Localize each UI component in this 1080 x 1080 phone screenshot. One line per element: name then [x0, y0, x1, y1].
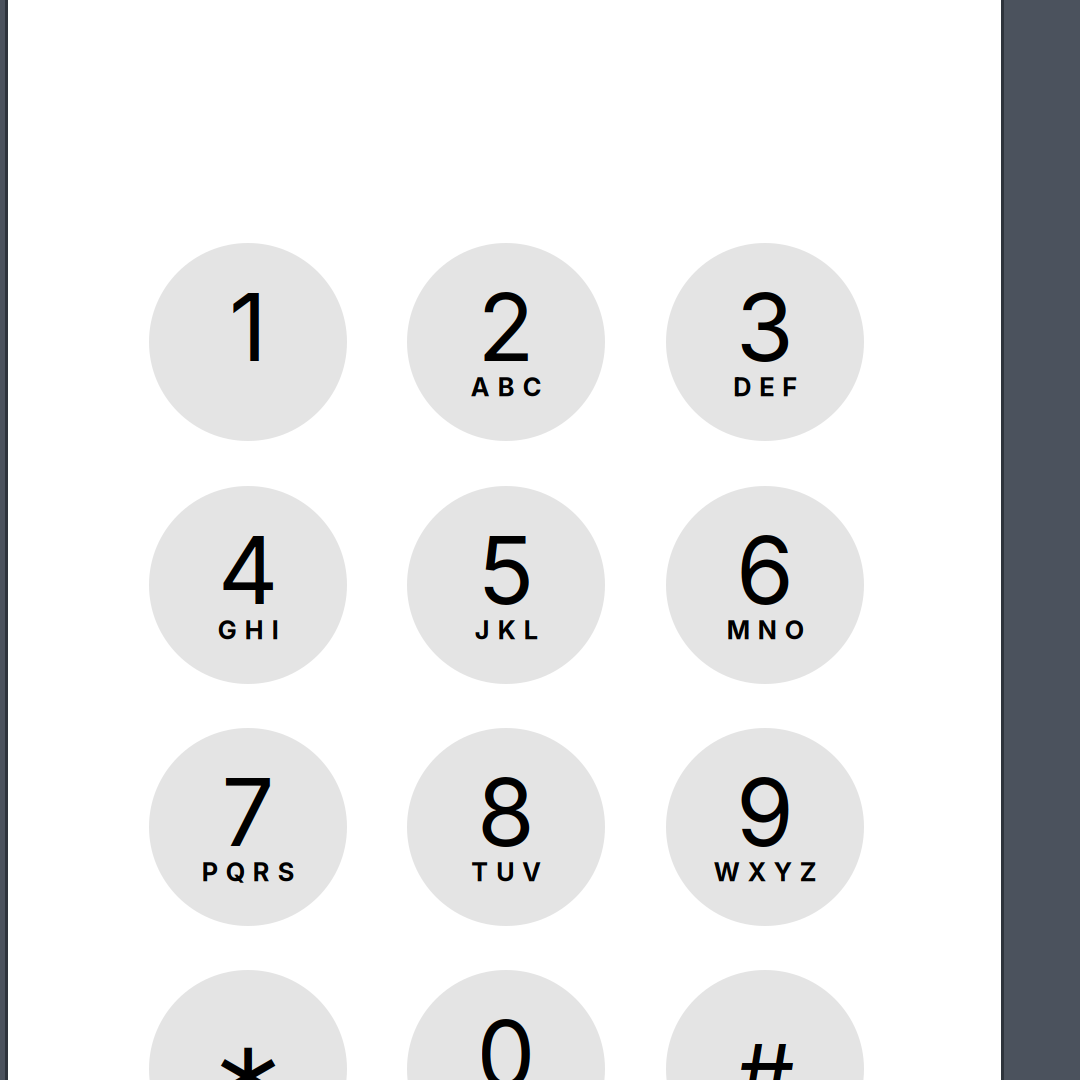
- button[interactable]: 9: [666, 728, 864, 926]
- staticText: 0: [476, 997, 535, 1080]
- staticText: 9: [736, 755, 794, 868]
- staticText: D E F: [733, 372, 797, 402]
- staticText: G H I: [217, 615, 278, 645]
- staticText: 6: [736, 513, 794, 626]
- staticText: A B C: [470, 372, 541, 402]
- staticText: 8: [477, 755, 535, 868]
- button[interactable]: 2: [407, 243, 605, 441]
- staticText: 3: [736, 270, 794, 383]
- staticText: W X Y Z: [713, 857, 816, 887]
- button[interactable]: 4: [149, 486, 347, 684]
- staticText: 2: [477, 270, 534, 383]
- button[interactable]: 8: [407, 728, 605, 926]
- staticText: T U V: [471, 857, 541, 887]
- staticText: J K L: [474, 615, 537, 645]
- staticText: ∗: [209, 1020, 287, 1080]
- button[interactable]: 1: [149, 243, 347, 441]
- button[interactable]: 0: [407, 970, 605, 1080]
- button[interactable]: 6: [666, 486, 864, 684]
- staticText: 5: [477, 513, 534, 626]
- staticText: 7: [221, 755, 274, 868]
- staticText: 1: [229, 270, 267, 383]
- button[interactable]: Pound: [666, 970, 864, 1080]
- staticText: 4: [218, 513, 278, 626]
- button[interactable]: Star: [149, 970, 347, 1080]
- staticText: #: [735, 1021, 794, 1080]
- staticText: P Q R S: [201, 857, 294, 887]
- button[interactable]: 7: [149, 728, 347, 926]
- button[interactable]: 5: [407, 486, 605, 684]
- button[interactable]: 3: [666, 243, 864, 441]
- staticText: M N O: [726, 615, 803, 645]
